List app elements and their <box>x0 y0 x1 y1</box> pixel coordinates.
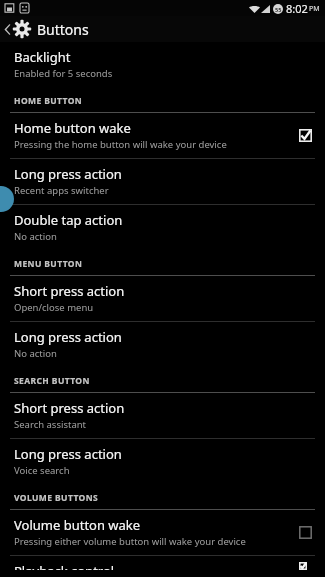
staticText: VOLUME BUTTONS <box>14 492 99 504</box>
button[interactable]: Long press action <box>0 159 325 204</box>
staticText: Buttons <box>37 20 89 39</box>
staticText: HOME BUTTON <box>14 95 83 107</box>
staticText: MENU BUTTON <box>14 258 83 270</box>
staticText: Voice search <box>14 464 70 477</box>
button[interactable]: Short press action <box>0 393 325 438</box>
button[interactable]: Playback control <box>0 556 325 577</box>
staticText: No action <box>14 347 57 360</box>
staticText: Enabled for 5 seconds <box>14 67 113 80</box>
staticText: Backlight <box>14 48 71 66</box>
staticText: SEARCH BUTTON <box>14 375 90 387</box>
staticText: Double tap action <box>14 211 123 229</box>
staticText: Playback control <box>14 562 115 570</box>
button[interactable]: Volume button wake <box>0 510 325 555</box>
staticText: No action <box>14 230 57 243</box>
staticText: Short press action <box>14 399 125 417</box>
button[interactable]: Short press action <box>0 276 325 321</box>
button[interactable]: Backlight <box>0 42 325 87</box>
staticText: 8:02 <box>286 1 308 16</box>
staticText: Home button wake <box>14 119 131 137</box>
staticText: Long press action <box>14 445 122 463</box>
staticText: PM <box>309 4 320 14</box>
button[interactable]: Back to previous screen, Buttons <box>0 16 325 42</box>
button[interactable]: Long press action <box>0 322 325 367</box>
staticText: Search assistant <box>14 418 87 431</box>
staticText: Short press action <box>14 282 125 300</box>
staticText: Pressing either volume button will wake … <box>14 535 246 548</box>
button[interactable]: Long press action <box>0 439 325 484</box>
button[interactable]: Double tap action <box>0 205 325 250</box>
staticText: Long press action <box>14 165 122 183</box>
staticText: Long press action <box>14 328 122 346</box>
staticText: Recent apps switcher <box>14 184 109 197</box>
staticText: 55 <box>275 6 282 13</box>
button[interactable]: Home button wake <box>0 113 325 158</box>
staticText: Volume button wake <box>14 516 141 534</box>
staticText: Open/close menu <box>14 301 94 314</box>
staticText: Pressing the home button will wake your … <box>14 138 227 151</box>
